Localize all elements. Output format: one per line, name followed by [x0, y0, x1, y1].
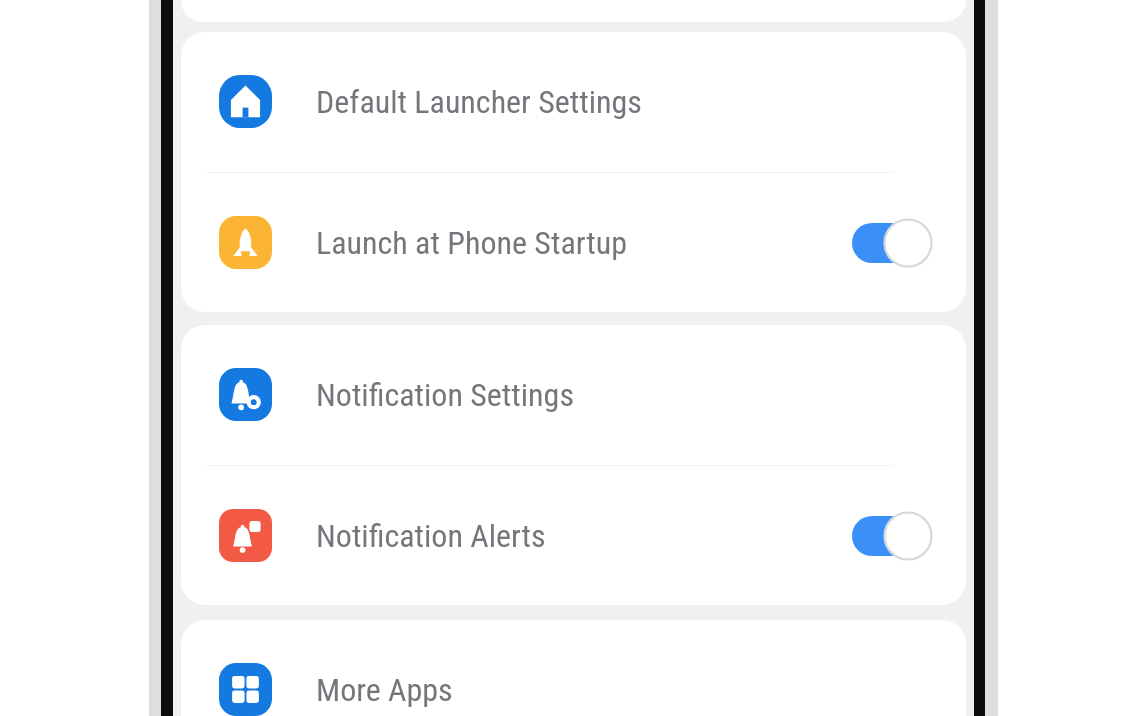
staticText: Notification Alerts: [316, 517, 546, 555]
button[interactable]: Notification Settings: [181, 325, 966, 464]
button[interactable]: Notification Alerts: [181, 466, 966, 605]
staticText: Default Launcher Settings: [316, 83, 642, 121]
button[interactable]: Toggle Notification Alerts: [852, 510, 932, 562]
staticText: Notification Settings: [316, 376, 574, 414]
button[interactable]: More Apps: [181, 620, 966, 716]
staticText: Launch at Phone Startup: [316, 224, 627, 262]
button[interactable]: Default Launcher Settings: [181, 32, 966, 171]
button[interactable]: Toggle Launch at Phone Startup: [852, 217, 932, 269]
staticText: More Apps: [316, 671, 453, 709]
button[interactable]: Launch at Phone Startup: [181, 173, 966, 312]
